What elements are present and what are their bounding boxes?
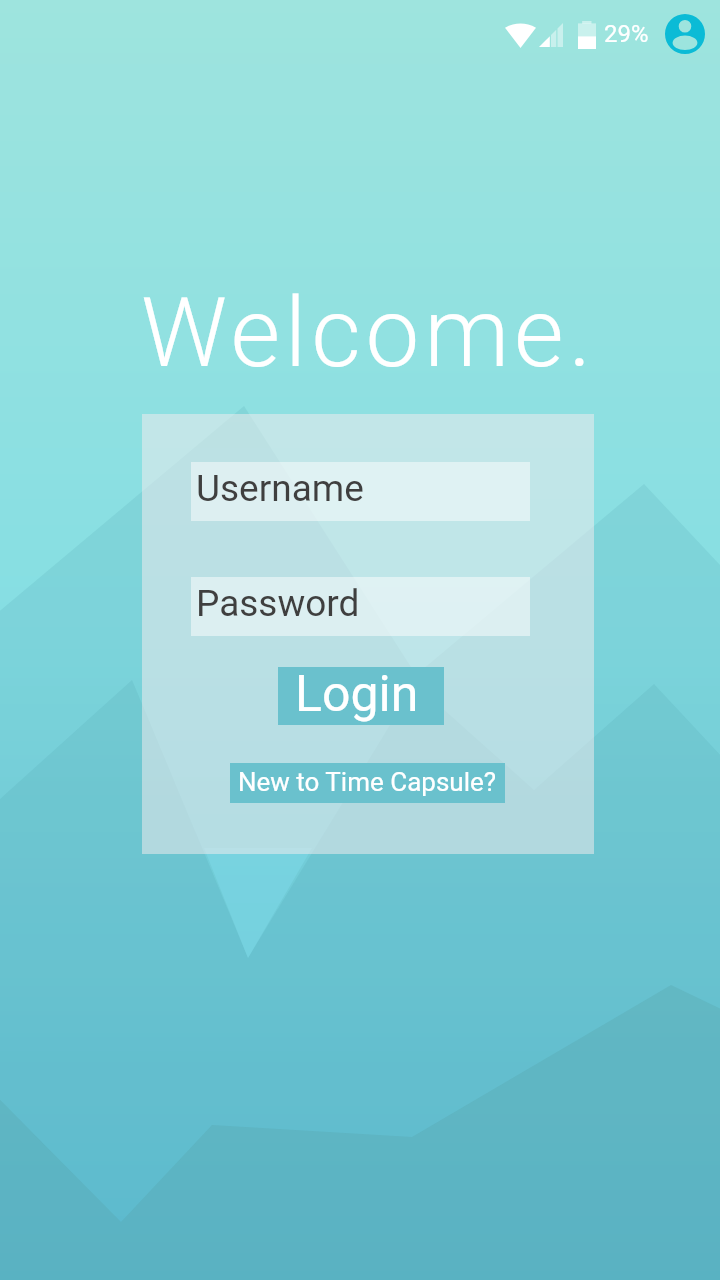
button[interactable]: Login (278, 667, 444, 725)
other: Signal (539, 23, 563, 47)
other: Wi-Fi (505, 22, 536, 48)
button[interactable]: Username (191, 462, 530, 521)
staticText: Login (295, 665, 419, 723)
button[interactable]: Password (191, 577, 530, 636)
button[interactable]: Account (665, 14, 705, 54)
button[interactable]: New to Time Capsule? (230, 763, 505, 803)
staticText: Password (196, 582, 360, 625)
staticText: Welcome. (141, 277, 597, 390)
staticText: New to Time Capsule? (238, 767, 497, 797)
staticText: Username (196, 467, 364, 510)
staticText: 29% (604, 20, 648, 48)
other: Battery (578, 21, 596, 49)
